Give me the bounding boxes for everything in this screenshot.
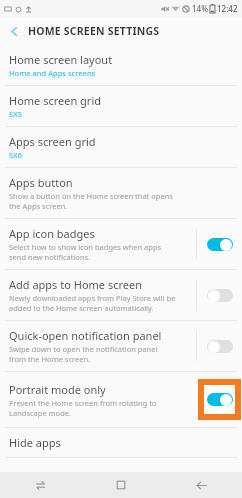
button[interactable]: Recent apps (0, 472, 80, 498)
staticText: Quick-open notification panel (9, 328, 162, 343)
staticText: 5X6 (9, 150, 23, 160)
staticText: Home screen grid (9, 93, 102, 108)
button[interactable]: Quick-open notification panel (0, 321, 242, 371)
button[interactable]: Add apps to Home screen (0, 270, 242, 320)
button[interactable]: Hide apps (0, 428, 242, 457)
button[interactable]: Toggle on (207, 238, 233, 251)
staticText: 5X5 (9, 109, 23, 119)
staticText: Portrait mode only (9, 382, 106, 397)
button[interactable]: App icon badges (0, 219, 242, 269)
button[interactable]: Back (161, 472, 242, 498)
button[interactable]: Apps button (0, 168, 242, 218)
staticText: Newly downloaded apps from Play Store wi… (9, 293, 176, 313)
staticText: HOME SCREEN SETTINGS (28, 24, 160, 38)
button[interactable]: Apps screen grid (0, 127, 242, 167)
button[interactable]: Portrait mode only (0, 372, 242, 427)
staticText: Hide apps (9, 435, 61, 450)
staticText: Swipe down to open the notification pane… (9, 344, 158, 364)
staticText: 12:42 (217, 3, 238, 14)
button[interactable]: Toggle off (207, 340, 233, 353)
staticText: Prevent the Home screen from rotating to… (9, 398, 157, 418)
staticText: 14% (192, 3, 208, 14)
staticText: Select how to show icon badges when apps… (9, 242, 162, 262)
button[interactable]: Toggle off (207, 289, 233, 302)
staticText: Add apps to Home screen (9, 277, 142, 292)
button[interactable]: Home (80, 472, 161, 498)
button[interactable]: Home screen layout (0, 45, 242, 85)
staticText: Apps button (9, 175, 73, 190)
staticText: Apps screen grid (9, 134, 96, 149)
staticText: Home and Apps screens (9, 68, 96, 78)
staticText: Show a button on the Home screen that op… (9, 191, 173, 211)
staticText: App icon badges (9, 226, 95, 241)
staticText: Home screen layout (9, 52, 113, 67)
button[interactable]: Toggle on (207, 393, 233, 406)
button[interactable]: Home screen grid (0, 86, 242, 126)
button[interactable]: Back (0, 17, 28, 45)
